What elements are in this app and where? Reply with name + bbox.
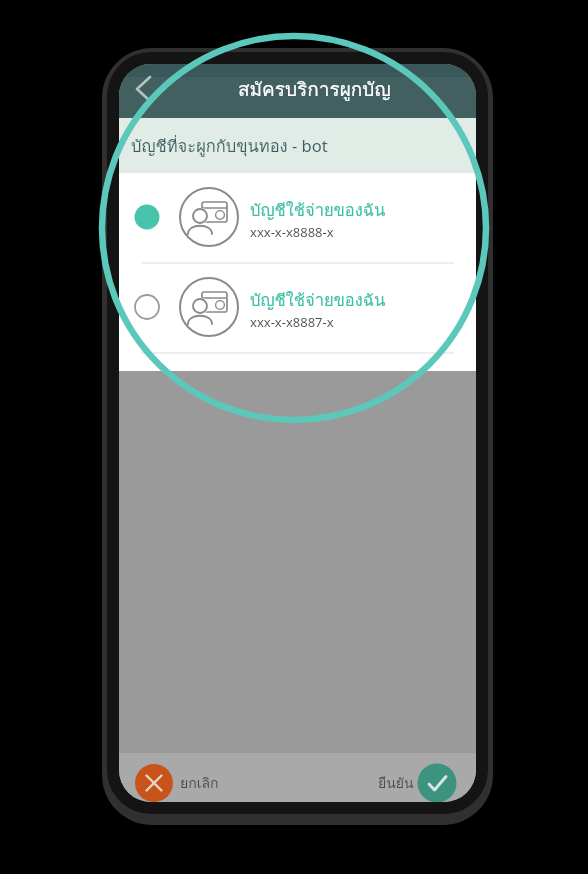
staticText: xxx-x-x8888-x: [250, 223, 334, 241]
button[interactable]: [119, 263, 476, 353]
button[interactable]: Confirm: [368, 760, 476, 806]
staticText: xxx-x-x8887-x: [250, 313, 334, 331]
staticText: บัญชีใช้จ่ายของฉัน: [250, 287, 386, 313]
button[interactable]: Cancel: [131, 760, 236, 806]
staticText: บัญชีใช้จ่ายของฉัน: [250, 197, 386, 223]
staticText: ยืนยัน: [378, 772, 414, 794]
button[interactable]: [119, 173, 476, 263]
staticText: สมัครบริการผูกบัญ: [238, 74, 391, 104]
staticText: ยกเลิก: [180, 772, 219, 794]
button[interactable]: Back: [124, 64, 170, 116]
staticText: บัญชีที่จะผูกกับขุนทอง - bot: [131, 133, 328, 159]
